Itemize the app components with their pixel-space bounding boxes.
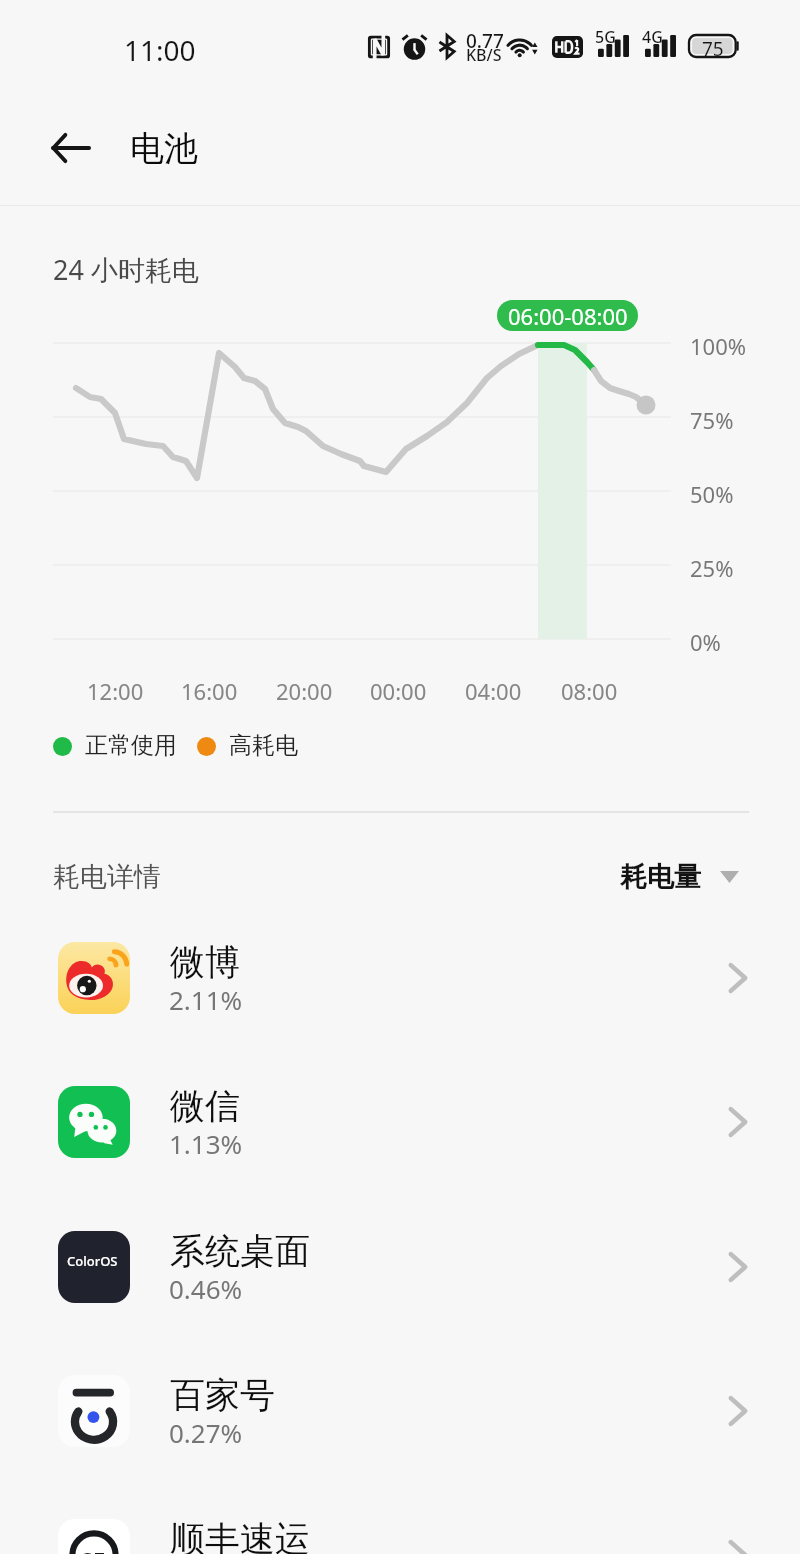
staticText: 1.13%: [169, 1126, 243, 1161]
staticText: 顺丰速运: [170, 1517, 310, 1554]
button[interactable]: 微信: [0, 1050, 800, 1194]
staticText: KB/S: [466, 44, 502, 66]
staticText: 正常使用: [85, 731, 177, 760]
button[interactable]: Back: [30, 112, 102, 184]
button[interactable]: 06:00-08:00: [497, 300, 638, 331]
staticText: 50%: [690, 479, 734, 509]
staticText: ColorOS: [67, 1252, 118, 1270]
staticText: 耗电量: [620, 860, 701, 894]
staticText: 25%: [690, 553, 734, 583]
staticText: 20:00: [276, 676, 333, 706]
staticText: 4G: [642, 26, 663, 48]
staticText: 2.11%: [169, 982, 243, 1017]
staticText: 微信: [170, 1084, 240, 1128]
staticText: 100%: [690, 331, 747, 361]
staticText: SF: [81, 1544, 106, 1554]
staticText: 0.77: [466, 28, 504, 54]
staticText: 04:00: [465, 676, 522, 706]
staticText: 08:00: [561, 676, 618, 706]
staticText: 24 小时耗电: [53, 251, 199, 288]
staticText: 电池: [130, 127, 198, 170]
staticText: 微博: [170, 940, 240, 984]
staticText: 系统桌面: [170, 1229, 310, 1273]
staticText: 12:00: [87, 676, 144, 706]
button[interactable]: ColorOS: [0, 1195, 800, 1339]
staticText: 耗电详情: [53, 860, 161, 894]
staticText: 16:00: [181, 676, 238, 706]
button[interactable]: 百家号: [0, 1339, 800, 1483]
staticText: 0.46%: [169, 1271, 243, 1306]
staticText: 高耗电: [229, 731, 298, 760]
staticText: 11:00: [124, 31, 196, 69]
staticText: 0%: [690, 627, 721, 657]
button[interactable]: SF: [0, 1483, 800, 1554]
staticText: 75: [702, 36, 724, 62]
staticText: 百家号: [170, 1373, 275, 1417]
staticText: 5G: [595, 26, 616, 48]
staticText: 00:00: [370, 676, 427, 706]
staticText: 06:00-08:00: [508, 301, 628, 331]
button[interactable]: 微博: [0, 906, 800, 1050]
staticText: 75%: [690, 405, 734, 435]
staticText: 0.27%: [169, 1415, 243, 1450]
button[interactable]: 耗电量: [620, 855, 739, 899]
